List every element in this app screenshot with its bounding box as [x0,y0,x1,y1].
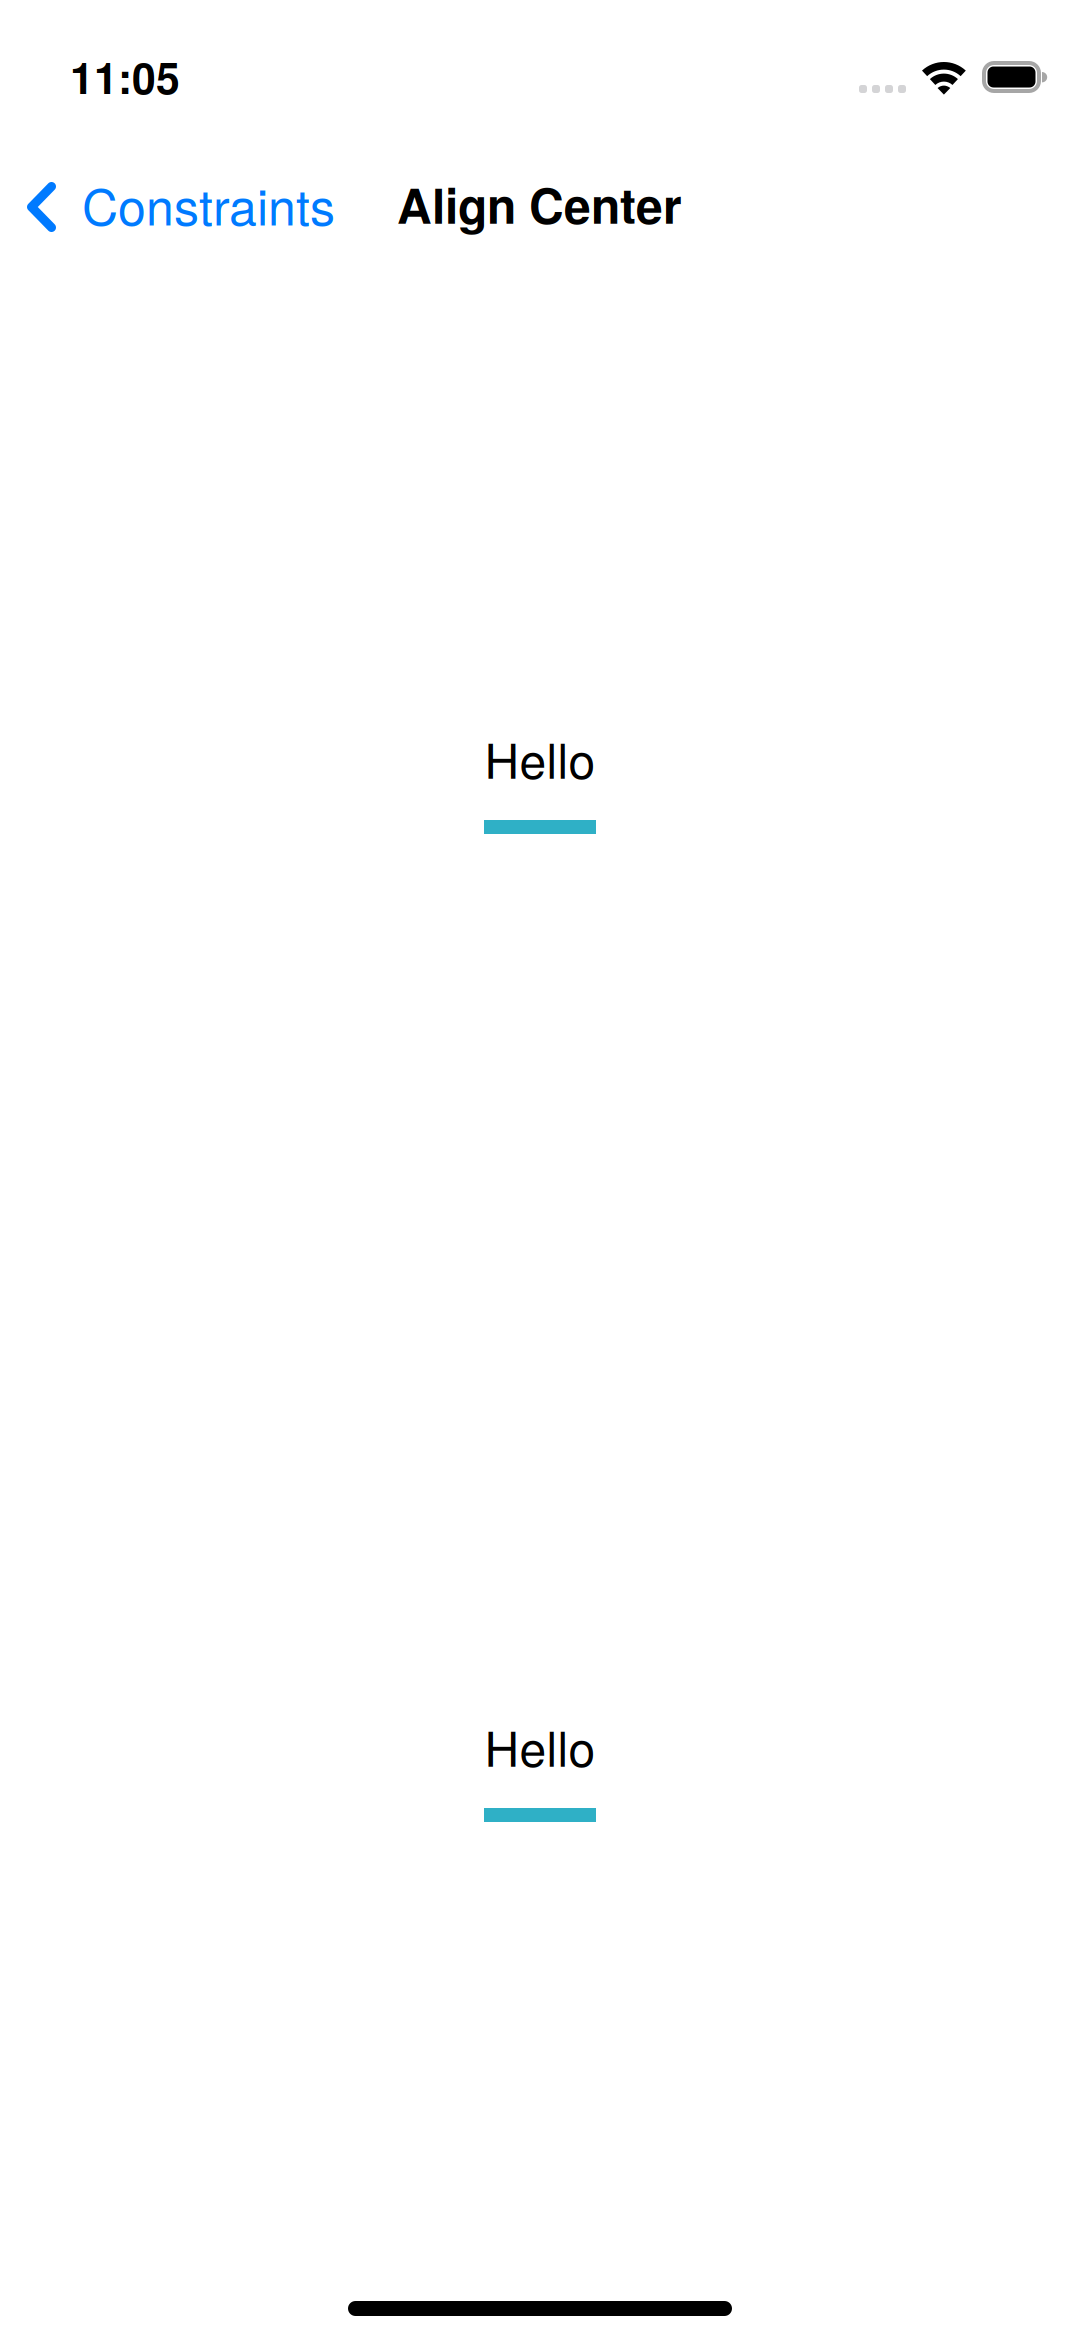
staticText: Constraints [82,168,335,240]
staticText: 11:05 [70,46,180,107]
staticText: Align Center [397,170,682,238]
staticText: Hello [484,1712,595,1780]
button[interactable]: Back to Constraints [0,159,349,255]
staticText: Hello [484,724,595,792]
